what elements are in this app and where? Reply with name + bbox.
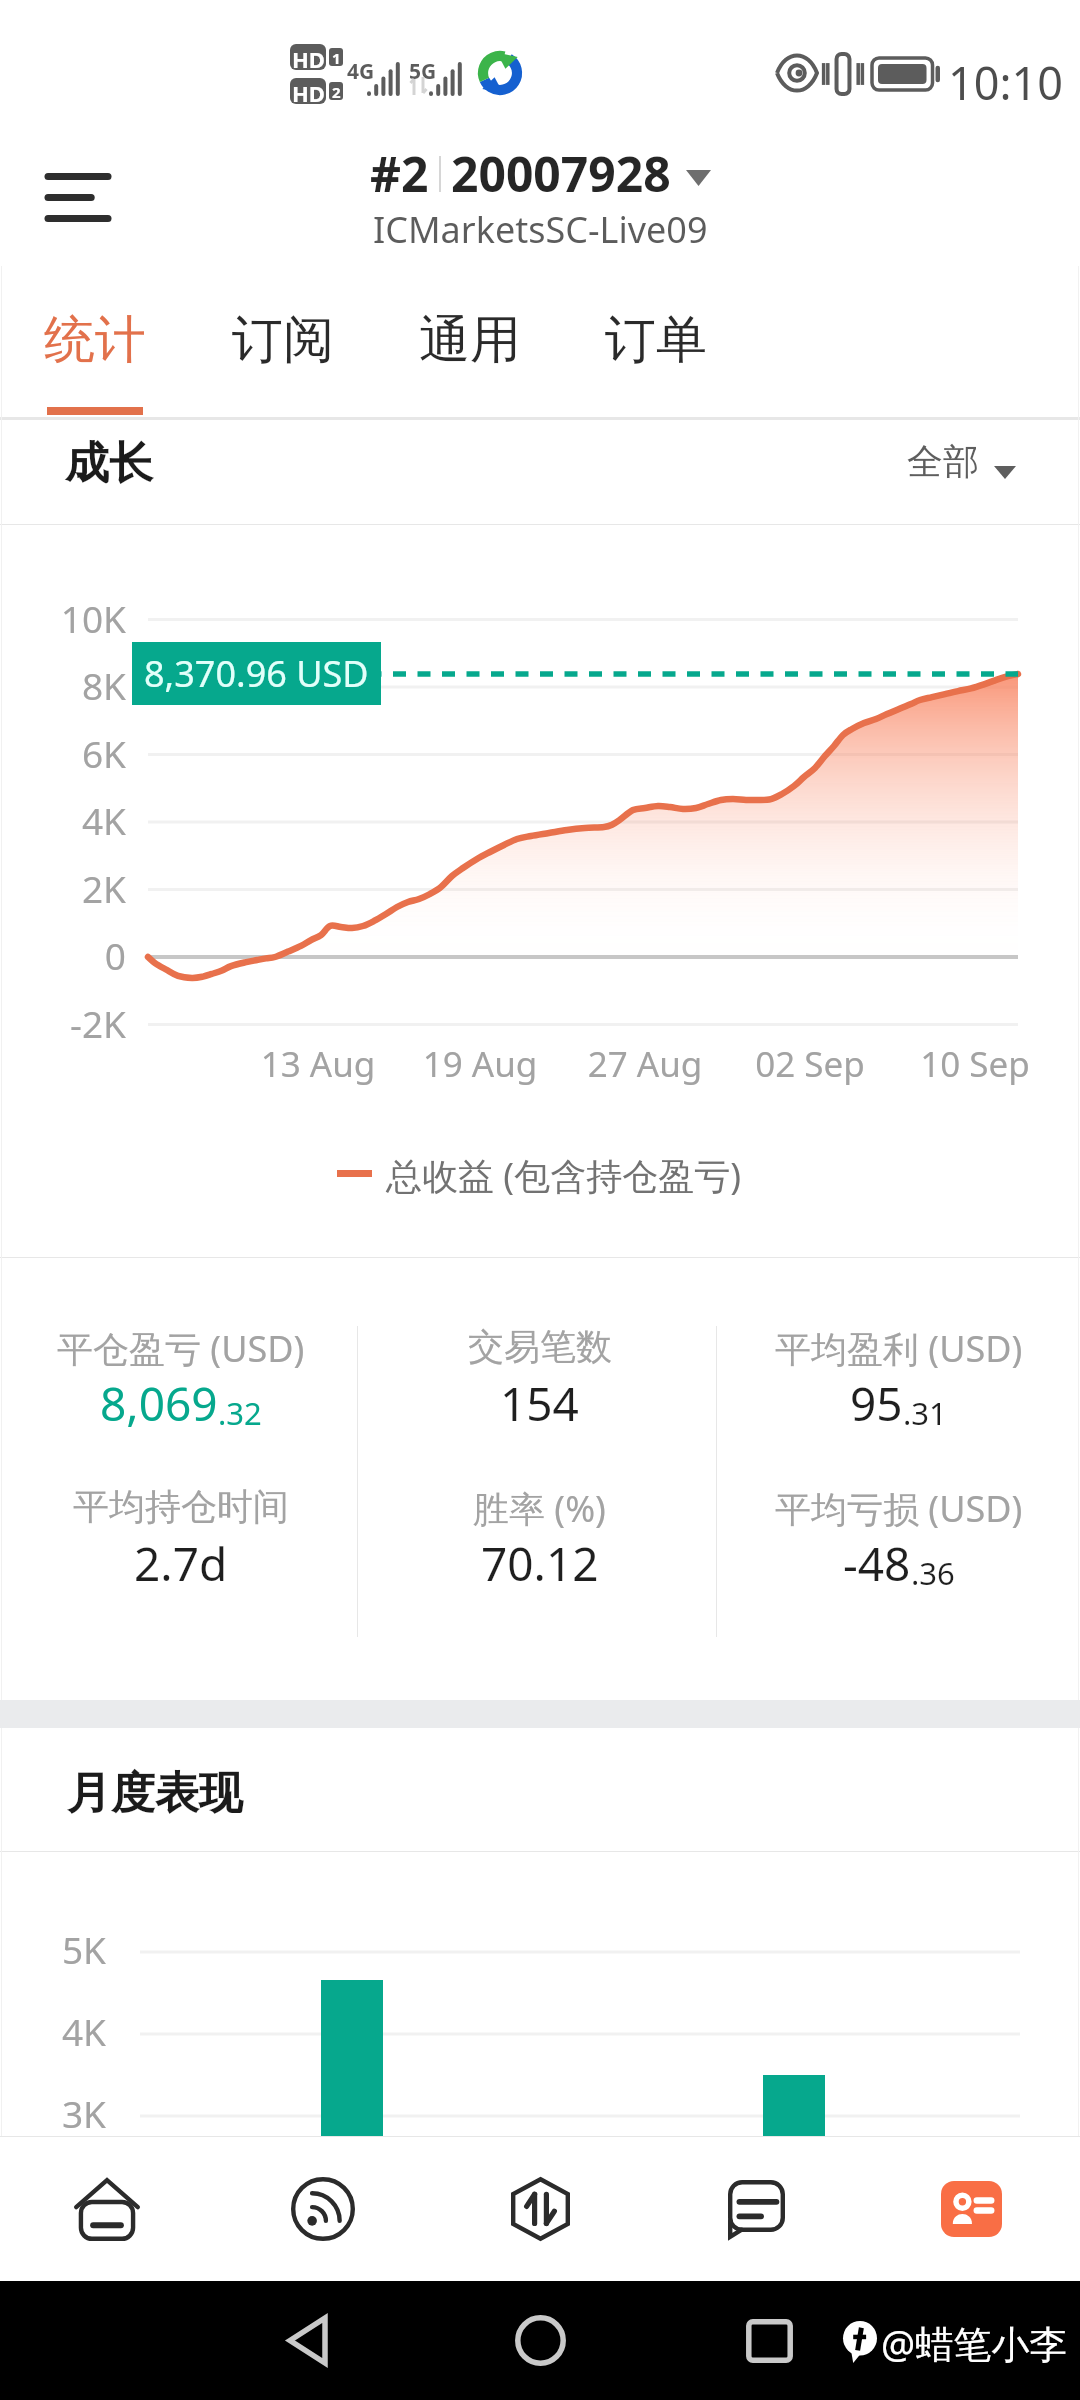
staticText: 交易笔数	[468, 1324, 612, 1369]
staticText: 4G	[347, 57, 375, 86]
button[interactable]: 订阅	[203, 269, 363, 417]
staticText: 平仓盈亏 (USD)	[57, 1324, 305, 1373]
staticText: 1	[332, 48, 341, 66]
staticText: 19 Aug	[380, 1040, 580, 1088]
staticText: 3K	[0, 2088, 106, 2138]
staticText: .31	[903, 1392, 947, 1434]
button[interactable]: Home	[480, 2281, 600, 2400]
staticText: .36	[911, 1552, 955, 1594]
staticText: 10:10	[948, 52, 1064, 113]
staticText: 胜率 (%)	[473, 1484, 606, 1533]
staticText: 8K	[0, 660, 126, 710]
button[interactable]: 订单	[576, 269, 736, 417]
staticText: 5K	[0, 1924, 106, 1974]
button[interactable]: Trade	[450, 2138, 630, 2280]
staticText: 8,069	[100, 1372, 218, 1435]
button[interactable]: Back	[247, 2281, 367, 2400]
staticText: 平均盈利 (USD)	[775, 1324, 1023, 1373]
staticText: 统计	[44, 308, 146, 372]
staticText: 全部	[907, 439, 979, 484]
staticText: ICMarketsSC-Live09	[373, 205, 708, 254]
staticText: HD	[292, 44, 325, 70]
staticText: 2	[332, 82, 341, 100]
staticText: 订单	[605, 308, 707, 372]
staticText: 8,370.96 USD	[144, 649, 369, 698]
button[interactable]: 胜率 (%)	[360, 1474, 719, 1584]
staticText: HD	[292, 78, 325, 104]
staticText: 2.7d	[134, 1532, 228, 1595]
staticText: 10K	[0, 593, 126, 643]
staticText: 10 Sep	[875, 1040, 1075, 1088]
staticText: 总收益 (包含持仓盈亏)	[386, 1151, 741, 1200]
button[interactable]: Profile	[881, 2138, 1061, 2280]
staticText: 成长	[65, 436, 153, 491]
button[interactable]: Messages	[666, 2138, 846, 2280]
button[interactable]: 平均亏损 (USD)	[719, 1474, 1078, 1584]
staticText: @蜡笔小李	[881, 2317, 1068, 2369]
button[interactable]: 全部	[890, 429, 1036, 515]
button[interactable]: 统计	[15, 269, 175, 417]
staticText: -2K	[0, 998, 126, 1048]
staticText: 0	[0, 930, 126, 980]
button[interactable]: 通用	[390, 269, 550, 417]
button[interactable]: #2	[330, 132, 750, 256]
staticText: 平均持仓时间	[73, 1484, 289, 1529]
staticText: 70.12	[481, 1532, 599, 1595]
staticText: 6K	[0, 728, 126, 778]
button[interactable]: Recents	[709, 2281, 829, 2400]
staticText: 154	[500, 1372, 579, 1435]
staticText: 13 Aug	[218, 1040, 418, 1088]
staticText: 月度表现	[67, 1766, 243, 1821]
staticText: -48	[843, 1532, 911, 1595]
staticText: 4K	[0, 795, 126, 845]
staticText: 5G	[409, 57, 437, 86]
staticText: 订阅	[232, 308, 334, 372]
staticText: 20007928	[451, 141, 671, 206]
staticText: 27 Aug	[545, 1040, 745, 1088]
staticText: 02 Sep	[710, 1040, 910, 1088]
staticText: .32	[218, 1392, 262, 1434]
staticText: 2K	[0, 863, 126, 913]
button[interactable]: 交易笔数	[360, 1314, 719, 1424]
staticText: 平均亏损 (USD)	[775, 1484, 1023, 1533]
staticText: #2	[370, 141, 429, 206]
button[interactable]: 平仓盈亏 (USD)	[1, 1314, 360, 1424]
button[interactable]: Home	[17, 2138, 197, 2280]
button[interactable]: 平均持仓时间	[1, 1474, 360, 1584]
staticText: 4K	[0, 2006, 106, 2056]
button[interactable]: Signals	[233, 2138, 413, 2280]
staticText: 通用	[419, 308, 521, 372]
button[interactable]: 平均盈利 (USD)	[719, 1314, 1078, 1424]
staticText: 95	[850, 1372, 903, 1435]
button[interactable]: Menu	[18, 142, 138, 252]
